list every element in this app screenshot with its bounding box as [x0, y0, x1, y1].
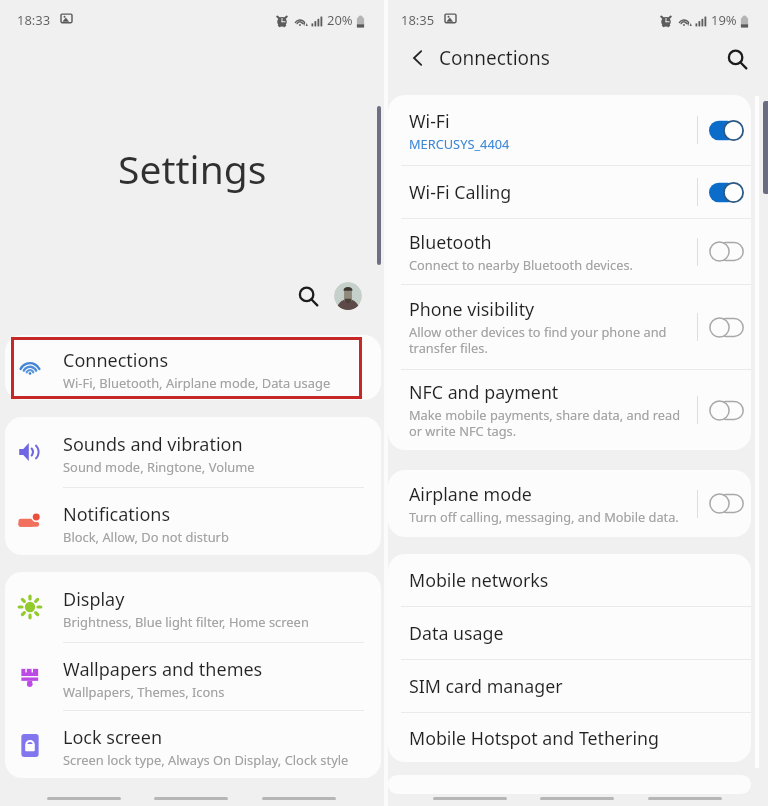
staticText: Wi-Fi Calling — [409, 180, 512, 204]
staticText: MERCUSYS_4404 — [409, 135, 510, 152]
button[interactable]: Recents — [33, 780, 135, 806]
staticText: Block, Allow, Do not disturb — [63, 528, 229, 546]
staticText: Brightness, Blue light filter, Home scre… — [63, 613, 309, 631]
staticText: 19% — [711, 11, 737, 29]
button[interactable]: Wi-Fi Calling — [388, 166, 751, 218]
button[interactable]: Wi-Fi Calling — [702, 166, 751, 218]
button[interactable]: Connections — [5, 335, 381, 400]
staticText: Sound mode, Ringtone, Volume — [63, 458, 255, 476]
staticText: Connect to nearby Bluetooth devices. — [409, 256, 633, 273]
button[interactable]: Back — [248, 780, 350, 806]
button[interactable]: Mobile networks — [388, 554, 751, 606]
button[interactable]: Data usage — [388, 607, 751, 659]
button[interactable]: Notifications — [5, 488, 381, 555]
button[interactable]: Bluetooth — [702, 219, 751, 284]
staticText: Screen lock type, Always On Display, Clo… — [63, 751, 349, 769]
staticText: Lock screen — [63, 725, 163, 750]
staticText: Data usage — [409, 621, 504, 645]
staticText: Turn off calling, messaging, and Mobile … — [409, 508, 679, 525]
button[interactable]: NFC and payment — [388, 370, 751, 450]
staticText: Airplane mode — [409, 482, 532, 506]
button[interactable]: Recents — [419, 780, 521, 806]
button[interactable]: NFC and payment — [702, 370, 751, 450]
staticText: 18:35 — [401, 11, 435, 29]
staticText: Wi-Fi — [409, 109, 450, 133]
button[interactable]: SIM card manager — [388, 660, 751, 712]
button[interactable]: Home — [140, 780, 242, 806]
staticText: 18:33 — [17, 11, 51, 29]
staticText: Wallpapers and themes — [63, 657, 263, 682]
button[interactable]: Back — [634, 780, 736, 806]
button[interactable]: Profile — [334, 282, 362, 310]
button[interactable]: Wi-Fi — [388, 95, 751, 165]
staticText: Notifications — [63, 502, 171, 527]
button[interactable]: Search — [722, 44, 753, 75]
button[interactable]: Wi-Fi — [702, 95, 751, 165]
button[interactable]: Display — [5, 572, 381, 642]
button[interactable]: Back — [403, 43, 433, 73]
button[interactable]: Search — [294, 282, 322, 310]
button[interactable]: Wallpapers and themes — [5, 643, 381, 710]
staticText: Allow other devices to find your phone a… — [409, 323, 667, 357]
button[interactable]: Sounds and vibration — [5, 417, 381, 487]
staticText: Connections — [439, 45, 550, 71]
staticText: Phone visibility — [409, 297, 535, 321]
button[interactable]: Bluetooth — [388, 219, 751, 284]
button[interactable]: Airplane mode — [702, 470, 751, 537]
staticText: Display — [63, 587, 125, 612]
staticText: Mobile networks — [409, 568, 549, 592]
staticText: Sounds and vibration — [63, 432, 243, 457]
staticText: Connections — [63, 348, 169, 373]
button[interactable]: Home — [526, 780, 628, 806]
staticText: Wi-Fi, Bluetooth, Airplane mode, Data us… — [63, 374, 331, 392]
button[interactable]: Phone visibility — [702, 285, 751, 369]
staticText: Settings — [118, 142, 267, 195]
staticText: Bluetooth — [409, 230, 492, 254]
button[interactable]: Airplane mode — [388, 470, 751, 537]
button[interactable]: Mobile Hotspot and Tethering — [388, 713, 751, 762]
staticText: NFC and payment — [409, 380, 559, 404]
staticText: SIM card manager — [409, 674, 563, 698]
staticText: Mobile Hotspot and Tethering — [409, 726, 659, 750]
staticText: Make mobile payments, share data, and re… — [409, 406, 681, 440]
staticText: Wallpapers, Themes, Icons — [63, 683, 225, 701]
button[interactable]: Lock screen — [5, 711, 381, 778]
staticText: 20% — [327, 11, 353, 29]
button[interactable]: Phone visibility — [388, 285, 751, 369]
